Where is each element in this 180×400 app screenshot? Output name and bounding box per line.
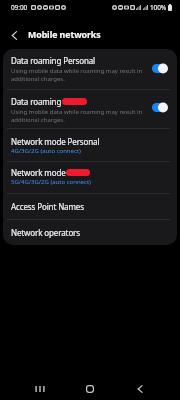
button[interactable]: Back	[123, 377, 157, 400]
button[interactable]: Access Point Names	[3, 194, 177, 219]
staticText: Network operators	[11, 227, 80, 238]
button[interactable]: Network mode Personal	[3, 129, 177, 161]
button[interactable]: Data roaming Personal	[3, 49, 177, 89]
staticText: Network mode	[11, 167, 66, 178]
staticText: 09:00	[11, 3, 28, 12]
button[interactable]: Data roaming	[3, 90, 177, 128]
staticText: 100%	[150, 3, 167, 12]
staticText: Using mobile data while roaming may resu…	[11, 108, 148, 124]
button[interactable]: Recent apps	[23, 377, 57, 400]
button[interactable]: Home	[73, 377, 107, 400]
staticText: Mobile networks	[28, 29, 101, 41]
staticText: Network mode Personal	[11, 136, 100, 147]
button[interactable]: Toggle data roaming	[152, 63, 168, 74]
staticText: Data roaming Personal	[11, 55, 96, 66]
staticText: 5G/4G/3G/2G (auto connect)	[11, 178, 91, 186]
button[interactable]: Toggle data roaming	[152, 102, 168, 113]
button[interactable]: Network mode	[3, 162, 177, 193]
staticText: Data roaming	[11, 96, 62, 107]
staticText: 4G/3G/2G (auto connect)	[11, 147, 81, 155]
button[interactable]: Network operators	[3, 220, 177, 245]
button[interactable]: Navigate up	[0, 25, 28, 45]
staticText: Access Point Names	[11, 201, 84, 212]
staticText: Using mobile data while roaming may resu…	[11, 67, 148, 83]
